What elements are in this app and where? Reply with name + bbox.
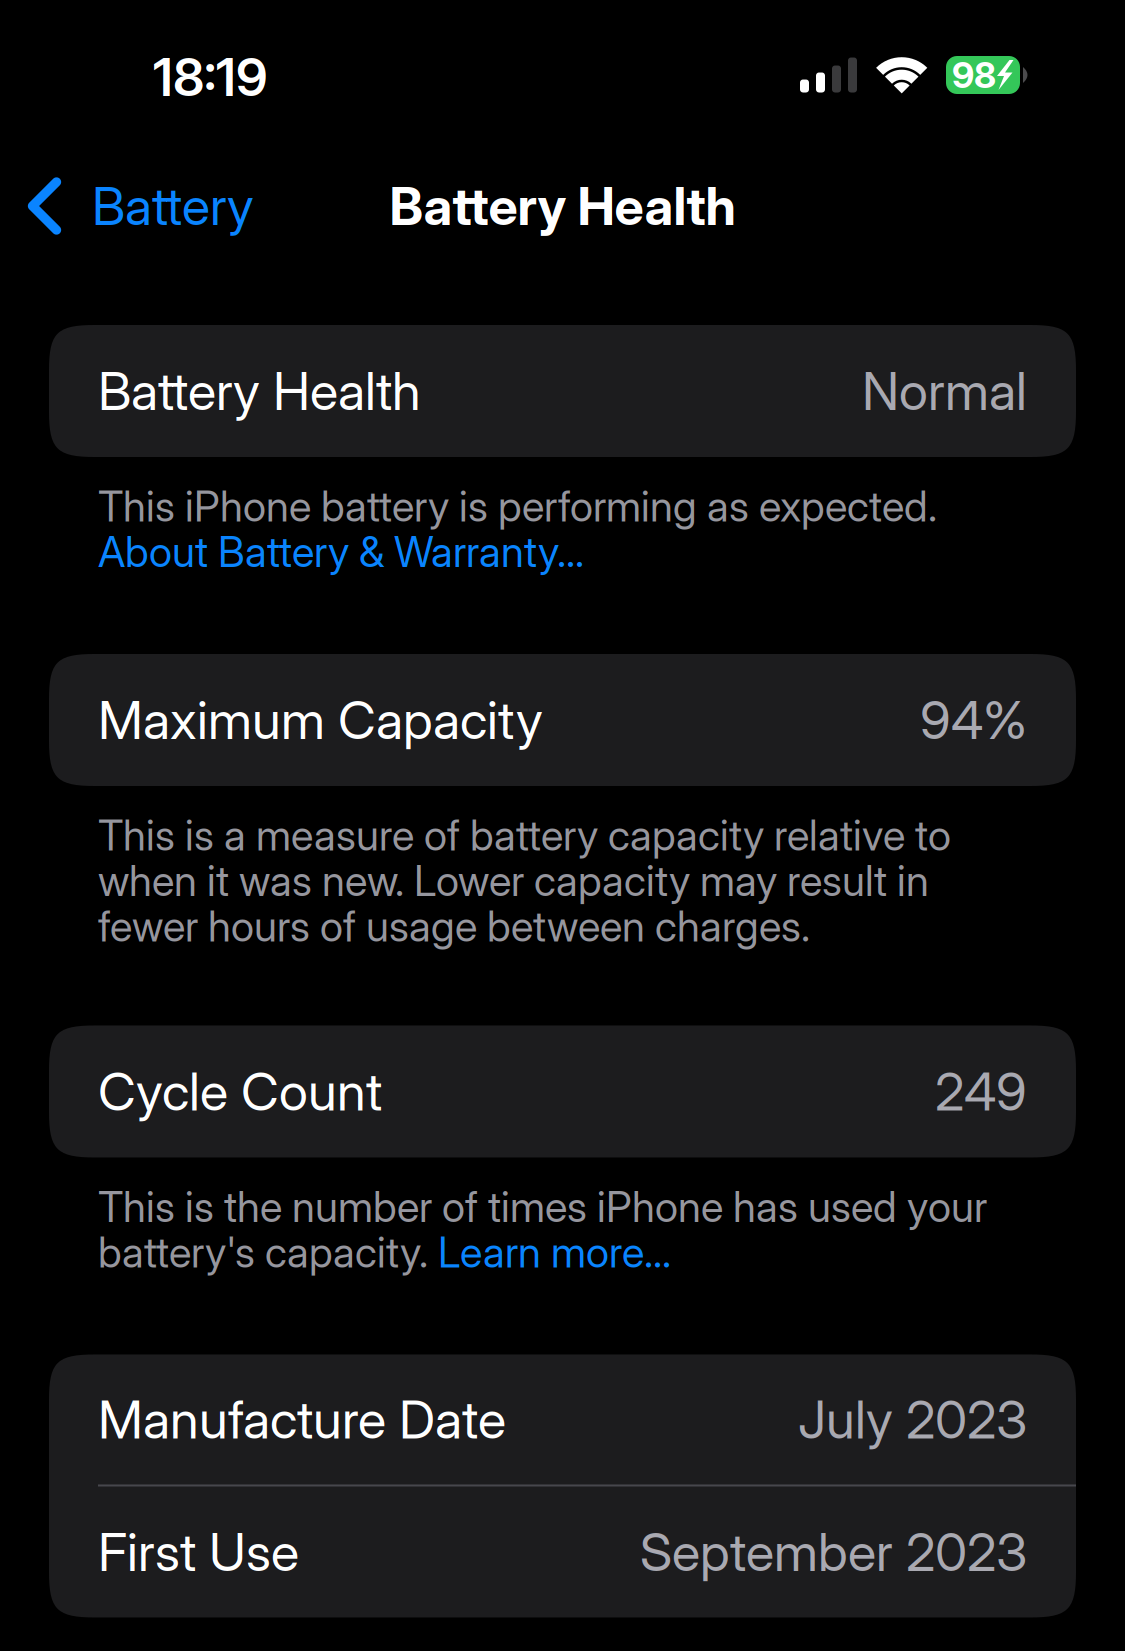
staticText: Battery Health bbox=[389, 174, 735, 237]
staticText: This is the number of times iPhone has u… bbox=[98, 1181, 987, 1232]
staticText: when it was new. Lower capacity may resu… bbox=[98, 855, 929, 906]
button[interactable]: First Use bbox=[49, 1486, 1076, 1617]
staticText: This is a measure of battery capacity re… bbox=[98, 810, 951, 860]
staticText: 18:19 bbox=[153, 45, 268, 108]
button[interactable]: About Battery & Warranty... bbox=[98, 526, 584, 577]
button[interactable]: Battery bbox=[0, 164, 278, 247]
staticText: Normal bbox=[862, 359, 1027, 423]
staticText: Manufacture Date bbox=[98, 1388, 506, 1451]
staticText: Battery Health bbox=[98, 359, 421, 423]
staticText: fewer hours of usage between charges. bbox=[98, 901, 810, 951]
button[interactable]: Maximum Capacity bbox=[49, 654, 1076, 786]
staticText: 249 bbox=[935, 1060, 1027, 1123]
staticText: battery's capacity. bbox=[98, 1227, 438, 1277]
button[interactable]: Battery Health bbox=[49, 325, 1076, 457]
staticText: Cycle Count bbox=[98, 1060, 382, 1123]
staticText: This iPhone battery is performing as exp… bbox=[98, 481, 937, 531]
staticText: About Battery & Warranty... bbox=[98, 526, 584, 577]
staticText: First Use bbox=[98, 1520, 299, 1584]
button[interactable]: Manufacture Date bbox=[49, 1354, 1076, 1484]
staticText: 98 bbox=[952, 53, 996, 97]
staticText: July 2023 bbox=[798, 1388, 1027, 1451]
staticText: 94% bbox=[920, 688, 1027, 752]
staticText: Battery bbox=[92, 174, 254, 237]
staticText: September 2023 bbox=[640, 1520, 1027, 1584]
button[interactable]: Learn more... bbox=[438, 1227, 671, 1277]
staticText: Learn more... bbox=[438, 1227, 671, 1277]
button[interactable]: Cycle Count bbox=[49, 1025, 1076, 1157]
staticText: Maximum Capacity bbox=[98, 688, 543, 752]
